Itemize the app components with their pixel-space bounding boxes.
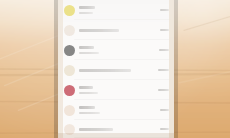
button[interactable]: Conversation: [58, 20, 174, 40]
button[interactable]: Conversation: [58, 0, 174, 20]
button[interactable]: Conversation: [58, 120, 174, 138]
button[interactable]: Conversation: [58, 80, 174, 100]
button[interactable]: Conversation: [58, 100, 174, 120]
button[interactable]: Conversation: [58, 0, 174, 138]
button[interactable]: Conversation: [58, 40, 174, 60]
button[interactable]: Conversation: [58, 60, 174, 80]
